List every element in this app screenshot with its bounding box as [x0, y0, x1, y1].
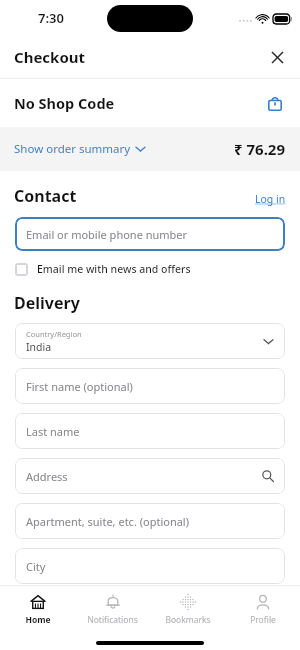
button[interactable]: Address: [15, 458, 285, 494]
button[interactable]: Apartment, suite, etc. (optional): [15, 503, 285, 539]
staticText: Apartment, suite, etc. (optional): [26, 514, 189, 529]
staticText: Profile: [250, 614, 276, 626]
button[interactable]: Email or mobile phone number: [15, 217, 285, 251]
button[interactable]: City: [15, 548, 285, 584]
staticText: Email me with news and offers: [37, 262, 191, 276]
staticText: Home: [25, 614, 51, 626]
staticText: ₹ 76.29: [234, 139, 286, 159]
staticText: Checkout: [14, 47, 86, 67]
button[interactable]: Close: [262, 42, 292, 72]
staticText: Bookmarks: [165, 614, 211, 626]
button[interactable]: Log in: [255, 192, 286, 207]
staticText: Delivery: [14, 292, 80, 314]
staticText: Address: [26, 469, 68, 484]
button[interactable]: Shop Pay: [260, 88, 290, 118]
staticText: Contact: [14, 185, 77, 207]
staticText: Email or mobile phone number: [26, 227, 188, 242]
button[interactable]: Show order summary: [14, 141, 145, 157]
button[interactable]: Home: [0, 592, 75, 628]
button[interactable]: Profile: [225, 592, 300, 628]
staticText: Last name: [26, 424, 80, 439]
staticText: India: [26, 340, 52, 354]
staticText: Show order summary: [14, 141, 131, 157]
button[interactable]: Bookmarks: [150, 592, 225, 628]
button[interactable]: Email me with news and offers: [15, 262, 191, 276]
staticText: First name (optional): [26, 379, 133, 394]
staticText: Country/Region: [26, 329, 82, 339]
staticText: City: [26, 559, 46, 574]
staticText: Log in: [255, 192, 286, 206]
button[interactable]: First name (optional): [15, 368, 285, 404]
button[interactable]: Notifications: [75, 592, 150, 628]
button[interactable]: Last name: [15, 413, 285, 449]
button[interactable]: Country/Region: [15, 323, 285, 359]
staticText: 7:30: [38, 9, 64, 27]
staticText: Notifications: [87, 614, 138, 626]
staticText: No Shop Code: [14, 93, 115, 113]
